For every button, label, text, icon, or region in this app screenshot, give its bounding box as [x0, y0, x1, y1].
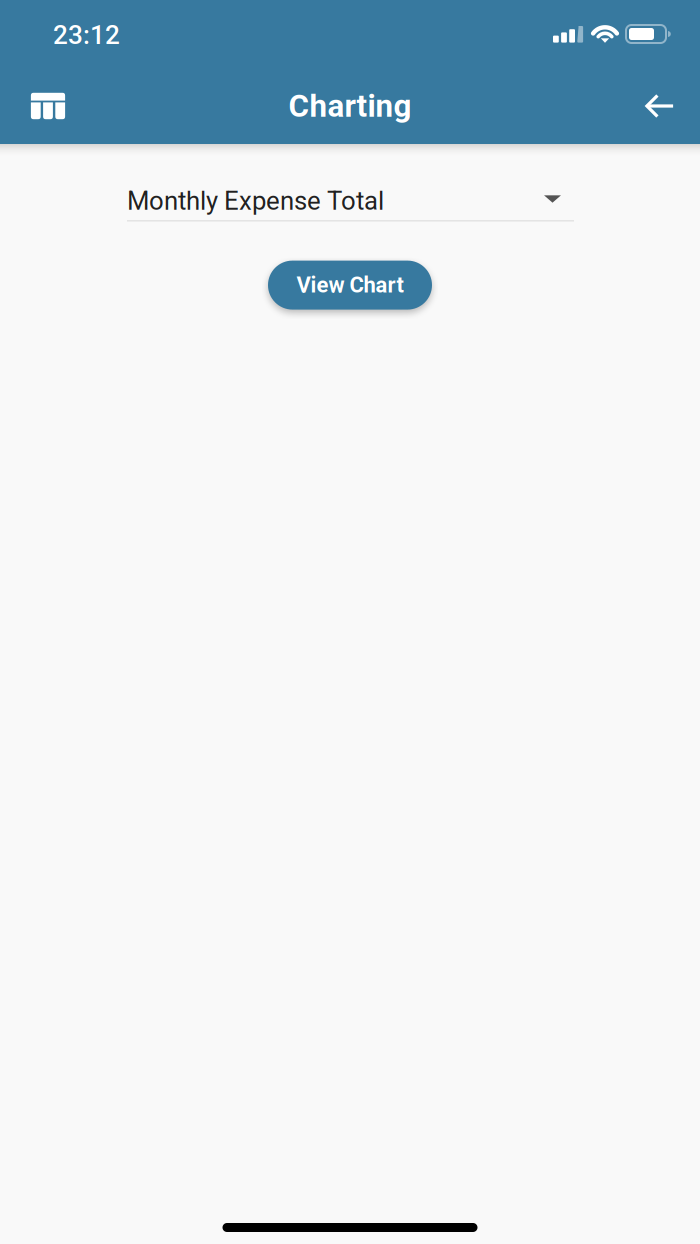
button[interactable]: View Chart — [268, 261, 432, 310]
staticText: Charting — [288, 88, 411, 124]
staticText: View Chart — [296, 272, 403, 298]
staticText: Monthly Expense Total — [127, 186, 384, 216]
button[interactable]: Monthly Expense Total — [127, 182, 574, 222]
button[interactable]: Table view — [14, 71, 82, 141]
button[interactable]: Back — [626, 71, 694, 141]
staticText: 23:12 — [53, 20, 120, 50]
